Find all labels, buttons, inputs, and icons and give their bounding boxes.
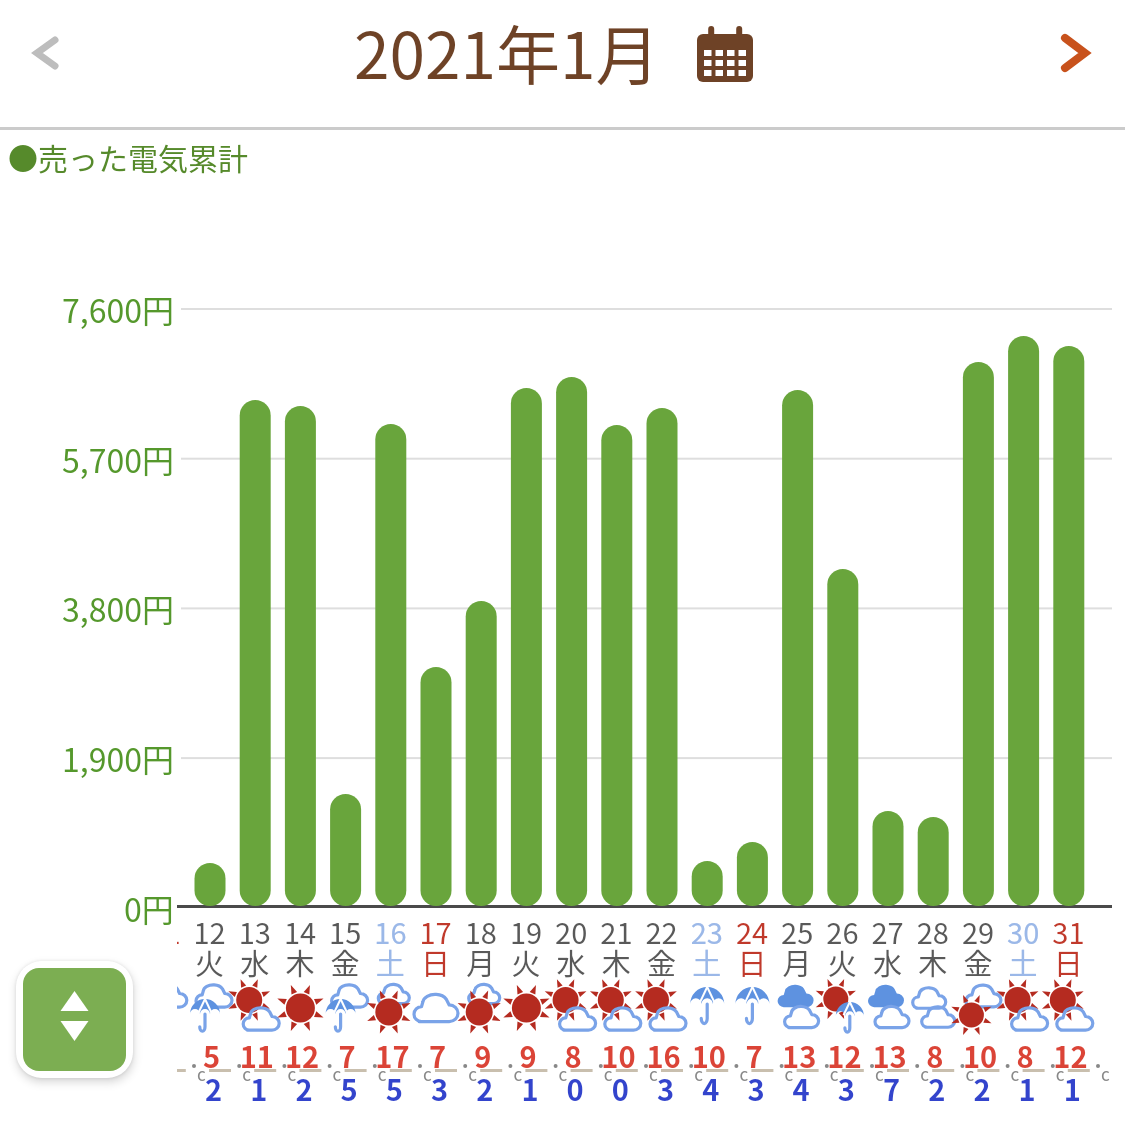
button[interactable] [20,28,72,80]
button[interactable] [1050,28,1102,80]
button[interactable] [16,961,133,1078]
